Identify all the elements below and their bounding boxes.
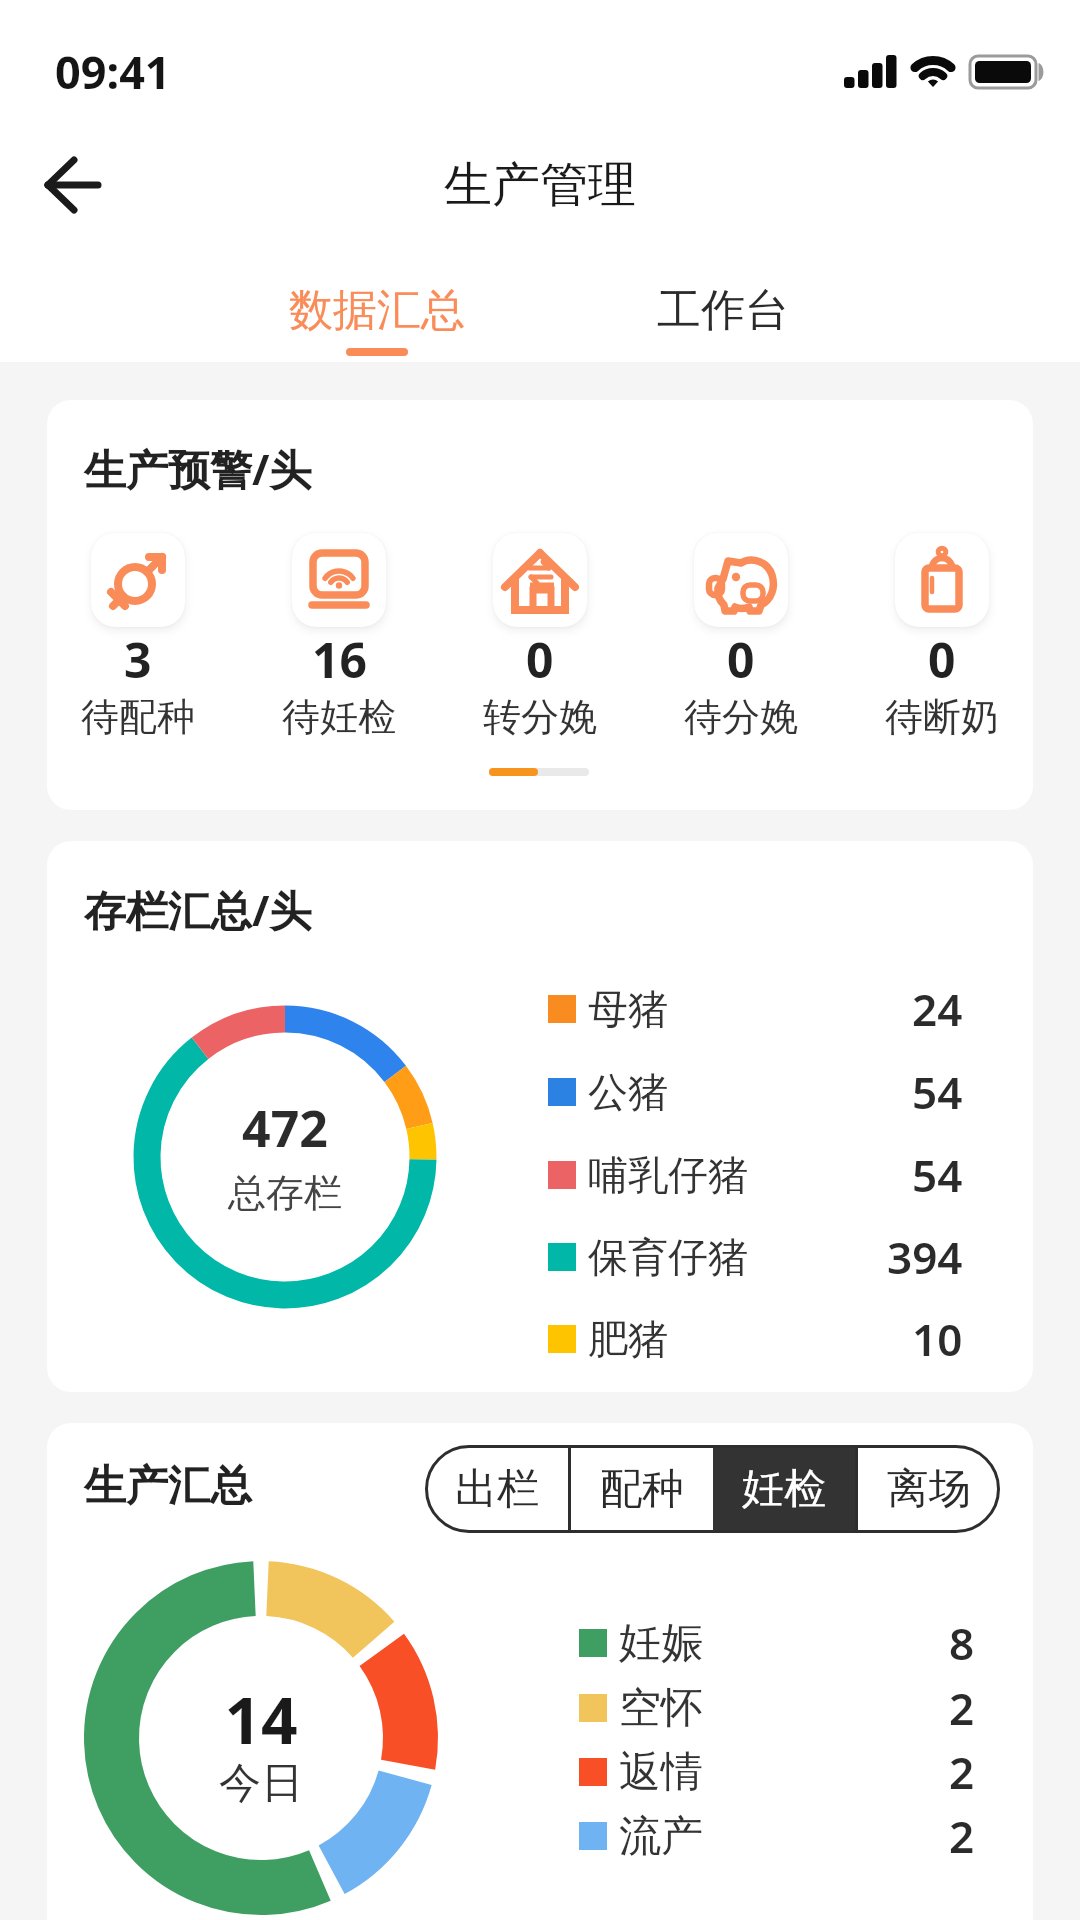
staticText: 数据汇总 [289, 283, 465, 338]
staticText: 2 [949, 1806, 975, 1866]
staticText: 待妊检 [282, 693, 396, 741]
staticText: 流产 [619, 1810, 703, 1863]
staticText: 肥猪 [588, 1314, 668, 1364]
staticText: 2 [949, 1678, 975, 1738]
staticText: 空怀 [619, 1682, 703, 1735]
staticText: 09:41 [55, 41, 171, 102]
button[interactable]: 出栏 [425, 1445, 568, 1533]
staticText: 今日 [11, 1757, 511, 1810]
button[interactable] [895, 533, 989, 627]
button[interactable]: 离场 [858, 1445, 1000, 1533]
staticText: 待配种 [81, 693, 195, 741]
button[interactable]: 配种 [571, 1445, 713, 1533]
staticText: 待断奶 [885, 693, 999, 741]
button[interactable] [493, 533, 587, 627]
staticText: 存栏汇总/头 [84, 881, 312, 938]
staticText: 10 [912, 1309, 963, 1369]
staticText: 472 [35, 1094, 535, 1162]
button[interactable] [694, 533, 788, 627]
staticText: 3 [124, 627, 152, 689]
staticText: 离场 [887, 1463, 971, 1516]
staticText: 妊检 [742, 1463, 826, 1516]
staticText: 公猪 [588, 1067, 668, 1117]
staticText: 生产管理 [290, 155, 790, 215]
button[interactable] [30, 150, 120, 222]
staticText: 14 [11, 1676, 511, 1763]
staticText: 保育仔猪 [588, 1232, 748, 1282]
staticText: 0 [526, 627, 554, 689]
staticText: 妊娠 [619, 1617, 703, 1670]
staticText: 待分娩 [684, 693, 798, 741]
button[interactable] [292, 533, 386, 627]
staticText: 总存栏 [35, 1169, 535, 1217]
staticText: 哺乳仔猪 [588, 1150, 748, 1200]
staticText: 生产汇总 [84, 1460, 252, 1513]
staticText: 16 [312, 627, 367, 689]
staticText: 生产预警/头 [84, 440, 312, 497]
button[interactable]: 工作台 [613, 275, 833, 345]
staticText: 24 [912, 979, 963, 1039]
staticText: 母猪 [588, 984, 668, 1034]
staticText: 54 [912, 1145, 963, 1205]
staticText: 工作台 [657, 283, 789, 338]
staticText: 0 [727, 627, 755, 689]
staticText: 394 [887, 1227, 963, 1287]
button[interactable] [91, 533, 185, 627]
button[interactable]: 数据汇总 [267, 275, 487, 345]
staticText: 0 [928, 627, 956, 689]
staticText: 出栏 [455, 1463, 539, 1516]
staticText: 配种 [600, 1463, 684, 1516]
staticText: 8 [949, 1613, 975, 1673]
staticText: 返情 [619, 1746, 703, 1799]
staticText: 2 [949, 1742, 975, 1802]
staticText: 转分娩 [483, 693, 597, 741]
button[interactable]: 妊检 [713, 1445, 855, 1533]
staticText: 54 [912, 1062, 963, 1122]
